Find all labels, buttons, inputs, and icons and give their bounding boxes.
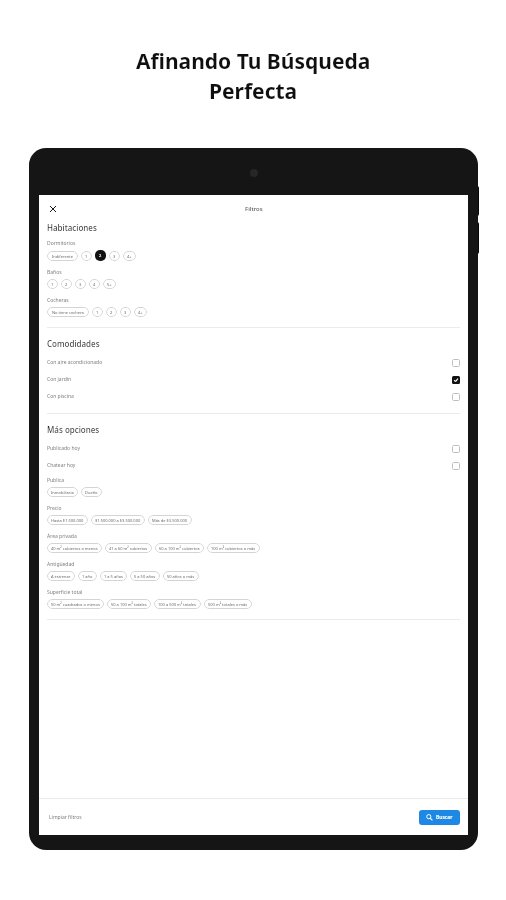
button[interactable]: 1	[81, 251, 92, 261]
button[interactable]: Hasta $1.500.000	[47, 515, 88, 525]
button[interactable]: 1 año	[78, 571, 97, 581]
button[interactable]: 3	[75, 279, 86, 289]
button[interactable]: 100 m² cubiertos o más	[207, 543, 260, 553]
staticText: 2	[110, 310, 113, 315]
button[interactable]: 100 a 500 m² totales	[154, 599, 201, 609]
button[interactable]: 50 m² cuadrados o menos	[47, 599, 104, 609]
staticText: Perfecta	[209, 77, 298, 106]
staticText: Filtros	[245, 205, 263, 213]
button[interactable]: Más de $3.500.000	[148, 515, 192, 525]
staticText: 40 m² cubiertos o menos	[51, 546, 98, 551]
staticText: Publicado hoy	[47, 445, 80, 452]
button[interactable]: Indiferente	[47, 251, 78, 261]
button[interactable]: $1.500.000 a $3.500.000	[91, 515, 145, 525]
button[interactable]: 4+	[123, 251, 136, 261]
button[interactable]: 5 a 50 años	[130, 571, 160, 581]
staticText: 3	[124, 310, 127, 315]
staticText: 1	[96, 310, 99, 315]
button[interactable]: 4	[89, 279, 100, 289]
button[interactable]: A estrenar	[47, 571, 75, 581]
button[interactable]: 1	[92, 307, 103, 317]
button[interactable]: 5+	[103, 279, 116, 289]
button[interactable]: Dueño	[81, 487, 102, 497]
staticText: 3	[113, 254, 116, 259]
button[interactable]: 50 años o más	[163, 571, 199, 581]
staticText: 1	[85, 254, 88, 259]
staticText: 50 a 100 m² totales	[111, 602, 147, 607]
button[interactable]: Con aire acondicionado	[47, 354, 460, 371]
staticText: Limpiar filtros	[49, 814, 82, 821]
button[interactable]: 2	[61, 279, 72, 289]
staticText: Precio	[47, 505, 62, 512]
staticText: 4	[93, 282, 96, 287]
staticText: Con piscina	[47, 393, 74, 400]
staticText: 4+	[138, 310, 143, 315]
staticText: Antigüedad	[47, 561, 75, 568]
staticText: 1	[51, 282, 54, 287]
staticText: Dueño	[85, 490, 98, 495]
staticText: 60 a 100 m² cubiertos	[159, 546, 200, 551]
staticText: A estrenar	[51, 574, 71, 579]
staticText: 4+	[127, 254, 132, 259]
button[interactable]: 4+	[134, 307, 147, 317]
staticText: Con aire acondicionado	[47, 359, 103, 366]
button[interactable]: 2	[95, 250, 106, 261]
staticText: Más de $3.500.000	[152, 518, 188, 523]
staticText: 41 a 60 m² cubiertos	[109, 546, 148, 551]
staticText: Habitaciones	[47, 222, 97, 233]
button[interactable]: Cerrar	[46, 202, 59, 215]
staticText: Baños	[47, 269, 62, 276]
button[interactable]: 3	[120, 307, 131, 317]
button[interactable]: 1 a 5 años	[100, 571, 127, 581]
button[interactable]: 40 m² cubiertos o menos	[47, 543, 102, 553]
button[interactable]: No tiene cochera	[47, 307, 89, 317]
button[interactable]: Inmobiliaria	[47, 487, 78, 497]
staticText: 5 a 50 años	[134, 574, 156, 579]
button[interactable]: Con piscina	[47, 388, 460, 405]
staticText: 500 m² totales o más	[208, 602, 248, 607]
staticText: Superficie total	[47, 589, 83, 596]
staticText: 1 año	[82, 574, 93, 579]
button[interactable]: 500 m² totales o más	[204, 599, 252, 609]
staticText: Indiferente	[52, 254, 73, 259]
staticText: Publica	[47, 477, 64, 484]
staticText: Con jardín	[47, 376, 72, 383]
staticText: 2	[65, 282, 68, 287]
staticText: 2	[99, 253, 102, 258]
button[interactable]: Buscar	[419, 810, 460, 825]
staticText: Inmobiliaria	[51, 490, 74, 495]
staticText: Más opciones	[47, 424, 100, 435]
staticText: No tiene cochera	[52, 310, 84, 315]
button[interactable]: Limpiar filtros	[47, 809, 84, 826]
staticText: 5+	[107, 282, 112, 287]
button[interactable]: 1	[47, 279, 58, 289]
staticText: 50 m² cuadrados o menos	[51, 602, 100, 607]
staticText: 100 a 500 m² totales	[158, 602, 197, 607]
staticText: 50 años o más	[167, 574, 195, 579]
staticText: Afinando Tu Búsqueda	[136, 47, 371, 76]
staticText: Área privada	[47, 533, 77, 540]
button[interactable]: 41 a 60 m² cubiertos	[105, 543, 152, 553]
staticText: Cocheras	[47, 297, 69, 304]
button[interactable]: Publicado hoy	[47, 440, 460, 457]
button[interactable]: 50 a 100 m² totales	[107, 599, 151, 609]
button[interactable]: 2	[106, 307, 117, 317]
staticText: Comodidades	[47, 338, 100, 349]
staticText: 1 a 5 años	[104, 574, 123, 579]
staticText: $1.500.000 a $3.500.000	[95, 518, 141, 523]
staticText: Buscar	[436, 814, 453, 821]
button[interactable]: 3	[109, 251, 120, 261]
staticText: 100 m² cubiertos o más	[211, 546, 256, 551]
button[interactable]: Con jardín	[47, 371, 460, 388]
staticText: Hasta $1.500.000	[51, 518, 84, 523]
button[interactable]: Chatear hoy	[47, 457, 460, 474]
staticText: 3	[79, 282, 82, 287]
staticText: Dormitorios	[47, 240, 76, 247]
staticText: Chatear hoy	[47, 462, 76, 469]
button[interactable]: 60 a 100 m² cubiertos	[155, 543, 204, 553]
